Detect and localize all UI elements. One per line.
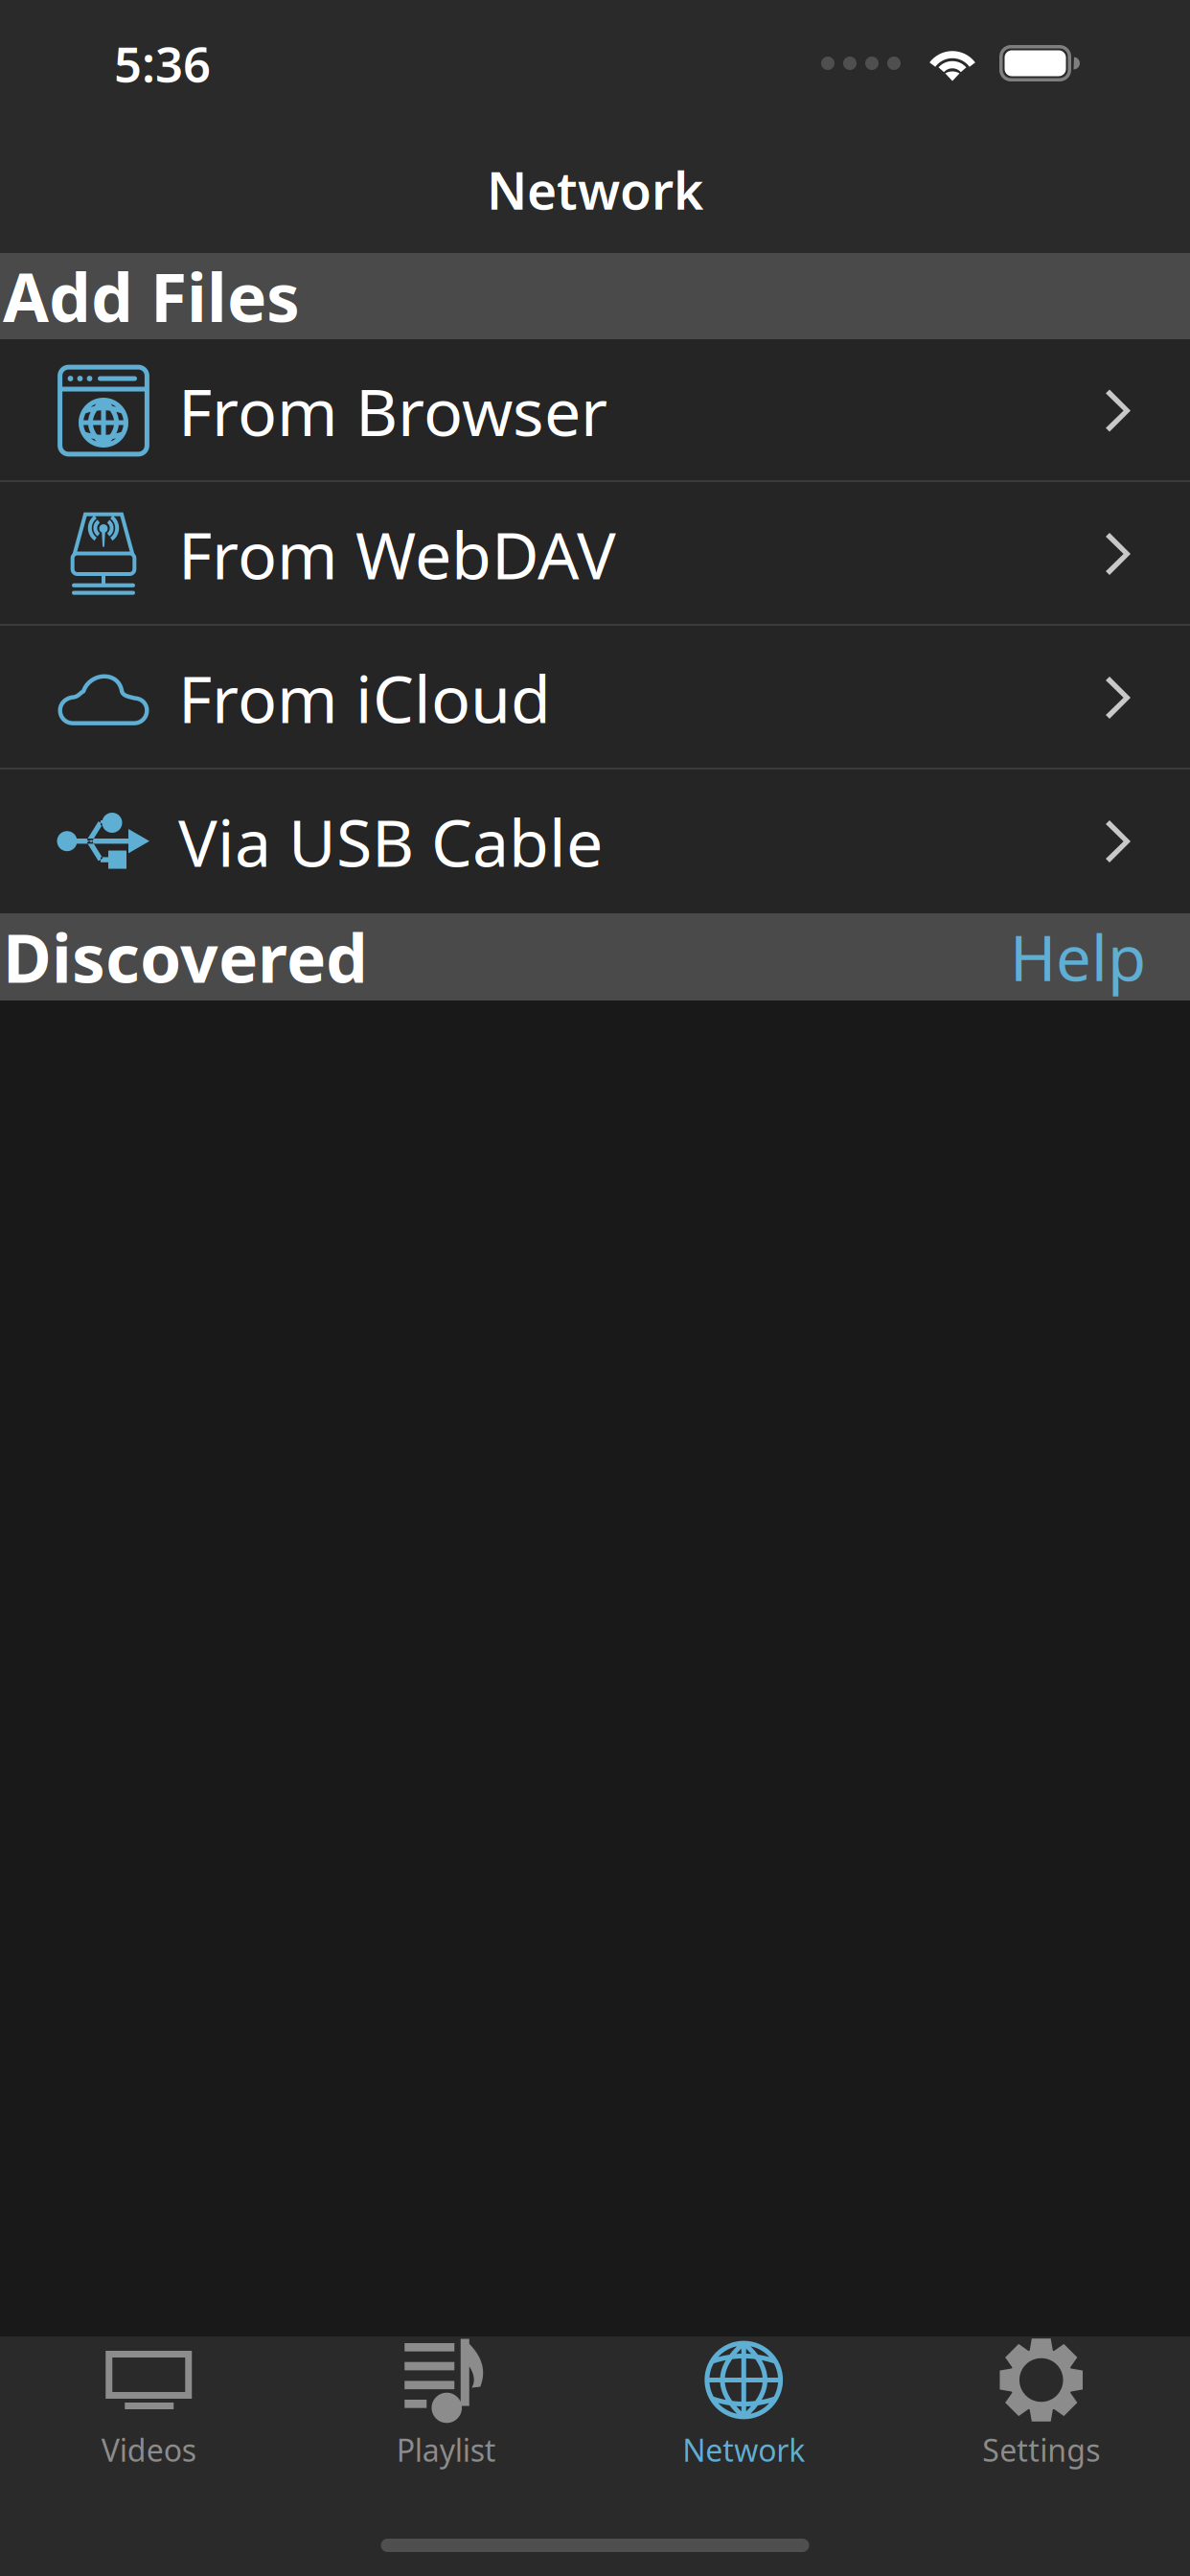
- staticText: From Browser: [178, 367, 607, 454]
- button[interactable]: From WebDAV: [0, 482, 1190, 626]
- staticText: From WebDAV: [178, 511, 616, 597]
- button[interactable]: Help: [1010, 915, 1146, 998]
- staticText: Network: [487, 156, 703, 224]
- button[interactable]: From iCloud: [0, 626, 1190, 770]
- staticText: From iCloud: [178, 654, 551, 741]
- staticText: Videos: [101, 2429, 196, 2470]
- staticText: Settings: [982, 2429, 1100, 2470]
- staticText: Via USB Cable: [178, 798, 603, 885]
- staticText: Add Files: [3, 252, 300, 340]
- staticText: Playlist: [396, 2429, 496, 2470]
- button[interactable]: From Browser: [0, 339, 1190, 482]
- button[interactable]: Settings: [892, 2336, 1190, 2480]
- staticText: 5:36: [114, 31, 211, 96]
- button[interactable]: Via USB Cable: [0, 770, 1190, 913]
- button[interactable]: Network: [595, 2336, 892, 2480]
- staticText: Discovered: [3, 913, 368, 1001]
- staticText: Network: [682, 2429, 805, 2470]
- staticText: Help: [1010, 915, 1146, 998]
- button[interactable]: Videos: [0, 2336, 297, 2480]
- button[interactable]: Playlist: [297, 2336, 595, 2480]
